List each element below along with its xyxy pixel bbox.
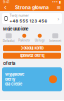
button[interactable]: Internet: [48, 32, 62, 43]
staticText: +48 555 123 456: [9, 19, 47, 23]
staticText: Doładuj konto: [20, 46, 43, 50]
staticText: dla Ciebie: [5, 82, 22, 86]
button[interactable]: Twój numer: [2, 13, 62, 24]
button[interactable]: Back: [2, 4, 9, 11]
staticText: Usługi: [35, 39, 45, 42]
staticText: Moje ulubione: [3, 26, 28, 31]
button[interactable]: Sprawdź ofertę: [3, 53, 61, 59]
staticText: Pakiety: [18, 39, 30, 42]
staticText: Sprawdź ofertę: [19, 53, 44, 58]
button[interactable]: Wyjątkowe: [2, 67, 62, 91]
button[interactable]: Doładuj konto: [3, 45, 61, 51]
staticText: 9:41: [3, 0, 9, 4]
staticText: ‹: [4, 3, 7, 12]
button[interactable]: Menu: [55, 4, 62, 11]
staticText: ≡: [56, 4, 60, 11]
staticText: Twój numer: [9, 13, 28, 18]
staticText: ›: [57, 16, 59, 21]
staticText: Internet: [49, 39, 61, 43]
button[interactable]: Doładuj: [2, 32, 15, 43]
staticText: ••• ▮: [52, 0, 61, 4]
staticText: oferty: [5, 77, 15, 81]
staticText: Strona główna: [15, 5, 49, 10]
staticText: Wyjątkowe: [5, 72, 24, 77]
staticText: Oferta: [3, 61, 15, 66]
staticText: Doładuj: [3, 39, 15, 43]
button[interactable]: Usługi: [33, 32, 46, 43]
button[interactable]: Pakiety: [17, 32, 31, 43]
